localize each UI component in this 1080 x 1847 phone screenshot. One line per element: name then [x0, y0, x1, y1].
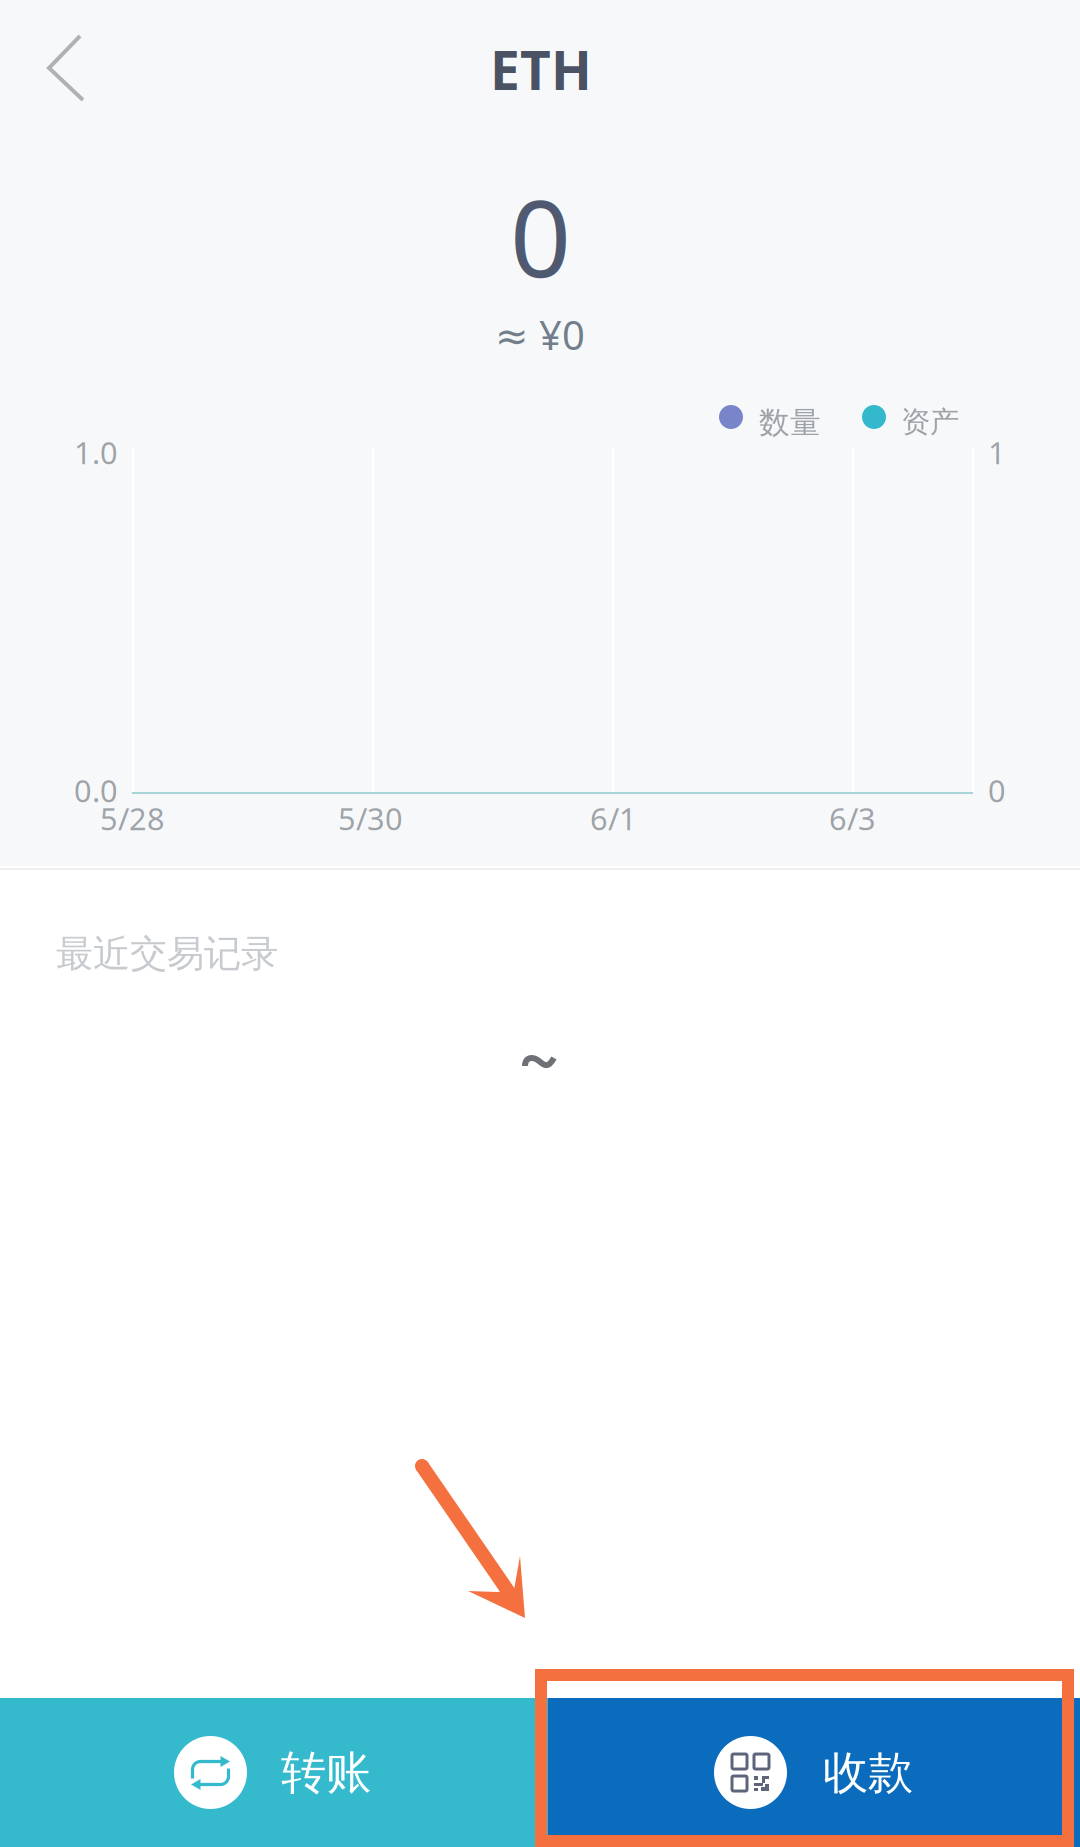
button[interactable]: 转账 [0, 1698, 548, 1847]
staticText: 资产 [901, 404, 959, 440]
staticText: 0 [988, 770, 1006, 811]
staticText: 数量 [759, 404, 821, 442]
staticText: 1.0 [74, 432, 118, 473]
staticText: ≈ ¥0 [495, 308, 585, 361]
staticText: 6/3 [829, 798, 876, 839]
button[interactable]: Back [0, 0, 117, 136]
staticText: 5/30 [338, 798, 403, 839]
staticText: 0 [510, 165, 571, 307]
staticText: 转账 [281, 1745, 371, 1801]
staticText: ETH [490, 34, 592, 105]
staticText: 最近交易记录 [56, 931, 278, 977]
button[interactable]: 收款 [548, 1698, 1080, 1847]
staticText: 0.0 [74, 770, 118, 811]
staticText: 6/1 [590, 798, 637, 839]
staticText: 5/28 [100, 798, 165, 839]
staticText: 1 [988, 432, 1006, 473]
staticText: 收款 [823, 1745, 913, 1801]
